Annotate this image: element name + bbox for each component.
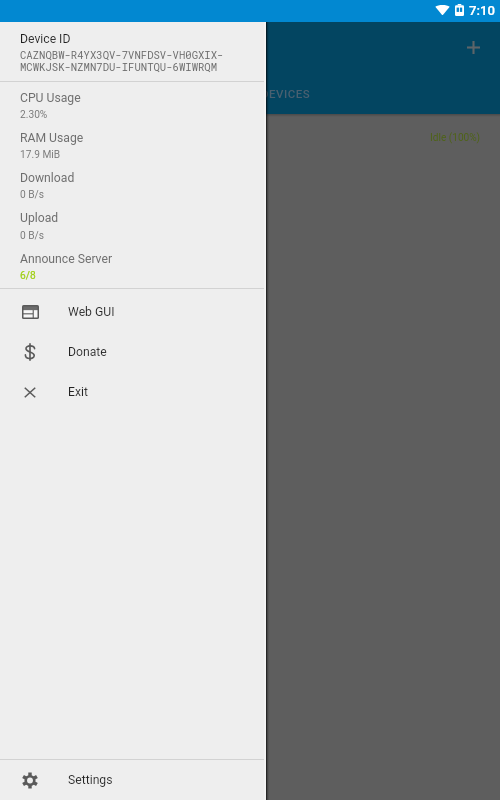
staticText: 6/8 — [20, 270, 36, 282]
staticText: Idle (100%) — [430, 132, 481, 144]
staticText: CPU Usage — [20, 91, 81, 105]
staticText: 0 B/s — [20, 189, 45, 201]
button[interactable]: FOLDERS — [106, 71, 226, 115]
staticText: Device ID — [20, 32, 71, 46]
staticText: 7:10 — [469, 3, 495, 18]
button[interactable]: Settings — [0, 760, 265, 800]
staticText: Download — [20, 171, 75, 185]
staticText: Exit — [68, 385, 88, 399]
staticText: Donate — [68, 345, 107, 359]
staticText: 2.30% — [20, 109, 48, 121]
staticText: RAM Usage — [20, 131, 84, 145]
button[interactable]: Close navigation drawer — [266, 22, 500, 800]
staticText: Settings — [68, 773, 113, 787]
button[interactable]: DEVICES — [226, 71, 346, 115]
button[interactable]: Web GUI — [0, 292, 265, 332]
staticText: Web GUI — [68, 305, 115, 319]
button[interactable]: Donate — [0, 332, 265, 372]
staticText: Upload — [20, 211, 59, 225]
staticText: DEVICES — [261, 87, 311, 100]
staticText: 17.9 MiB — [20, 149, 61, 161]
button[interactable]: Exit — [0, 372, 265, 412]
button[interactable]: Add device — [453, 27, 493, 67]
staticText: 0 B/s — [20, 230, 45, 242]
staticText: CAZNQBW-R4YX3QV-7VNFDSV-VH0GXIX- MCWKJSK… — [20, 48, 224, 74]
staticText: Announce Server — [20, 252, 113, 266]
